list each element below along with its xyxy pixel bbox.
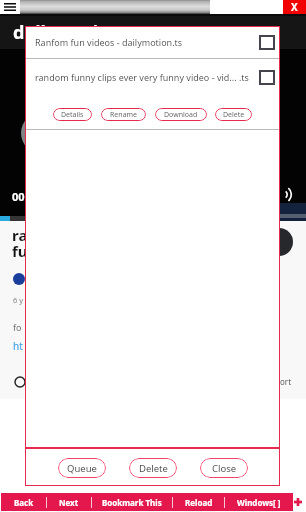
button[interactable]: Select file — [259, 70, 275, 85]
staticText: 00: — [12, 189, 28, 204]
button[interactable] — [20, 0, 283, 14]
button[interactable]: Back — [1, 493, 46, 511]
staticText: Windows[ ] — [237, 497, 281, 508]
button[interactable]: Delete — [215, 108, 252, 121]
staticText: Queue — [67, 462, 97, 475]
staticText: random funny clips ever very funny video… — [35, 71, 254, 83]
button[interactable]: Queue — [58, 458, 106, 478]
button[interactable]: Rename — [101, 108, 146, 121]
button[interactable]: Next — [47, 493, 91, 511]
staticText: Delete — [139, 462, 168, 475]
button[interactable]: Close window — [283, 0, 306, 14]
button[interactable]: Download — [155, 108, 207, 121]
button[interactable]: Menu — [0, 0, 20, 14]
staticText: 6 y — [13, 295, 24, 305]
staticText: ht — [13, 339, 23, 353]
staticText: Details — [61, 110, 84, 120]
button[interactable]: Details — [53, 108, 92, 121]
button[interactable]: Select file — [259, 35, 275, 50]
staticText: dailymotion — [13, 20, 122, 45]
button[interactable]: Ranfom fun videos - dailymotion.ts — [25, 26, 280, 58]
staticText: Next — [59, 497, 79, 508]
staticText: ort — [280, 376, 292, 387]
button[interactable]: random funny clips ever very funny video… — [25, 59, 280, 95]
staticText: Close — [212, 462, 237, 475]
staticText: Download — [164, 110, 198, 120]
staticText: Delete — [223, 110, 245, 120]
staticText: Bookmark This — [102, 497, 162, 508]
staticText: Rename — [110, 110, 138, 120]
staticText: Back — [14, 497, 34, 508]
staticText: fo — [13, 321, 22, 333]
button[interactable]: Bookmark This — [92, 493, 172, 511]
button[interactable]: Close — [200, 458, 248, 478]
staticText: X — [291, 0, 298, 14]
button[interactable]: Delete — [129, 458, 177, 478]
button[interactable]: Reload — [173, 493, 224, 511]
staticText: Ranfom fun videos - dailymotion.ts — [35, 36, 254, 48]
button[interactable]: New tab — [294, 498, 302, 506]
staticText: ra — [12, 225, 28, 245]
button[interactable]: Windows[ ] — [225, 493, 293, 511]
staticText: fu — [12, 241, 28, 261]
staticText: Reload — [185, 497, 213, 508]
